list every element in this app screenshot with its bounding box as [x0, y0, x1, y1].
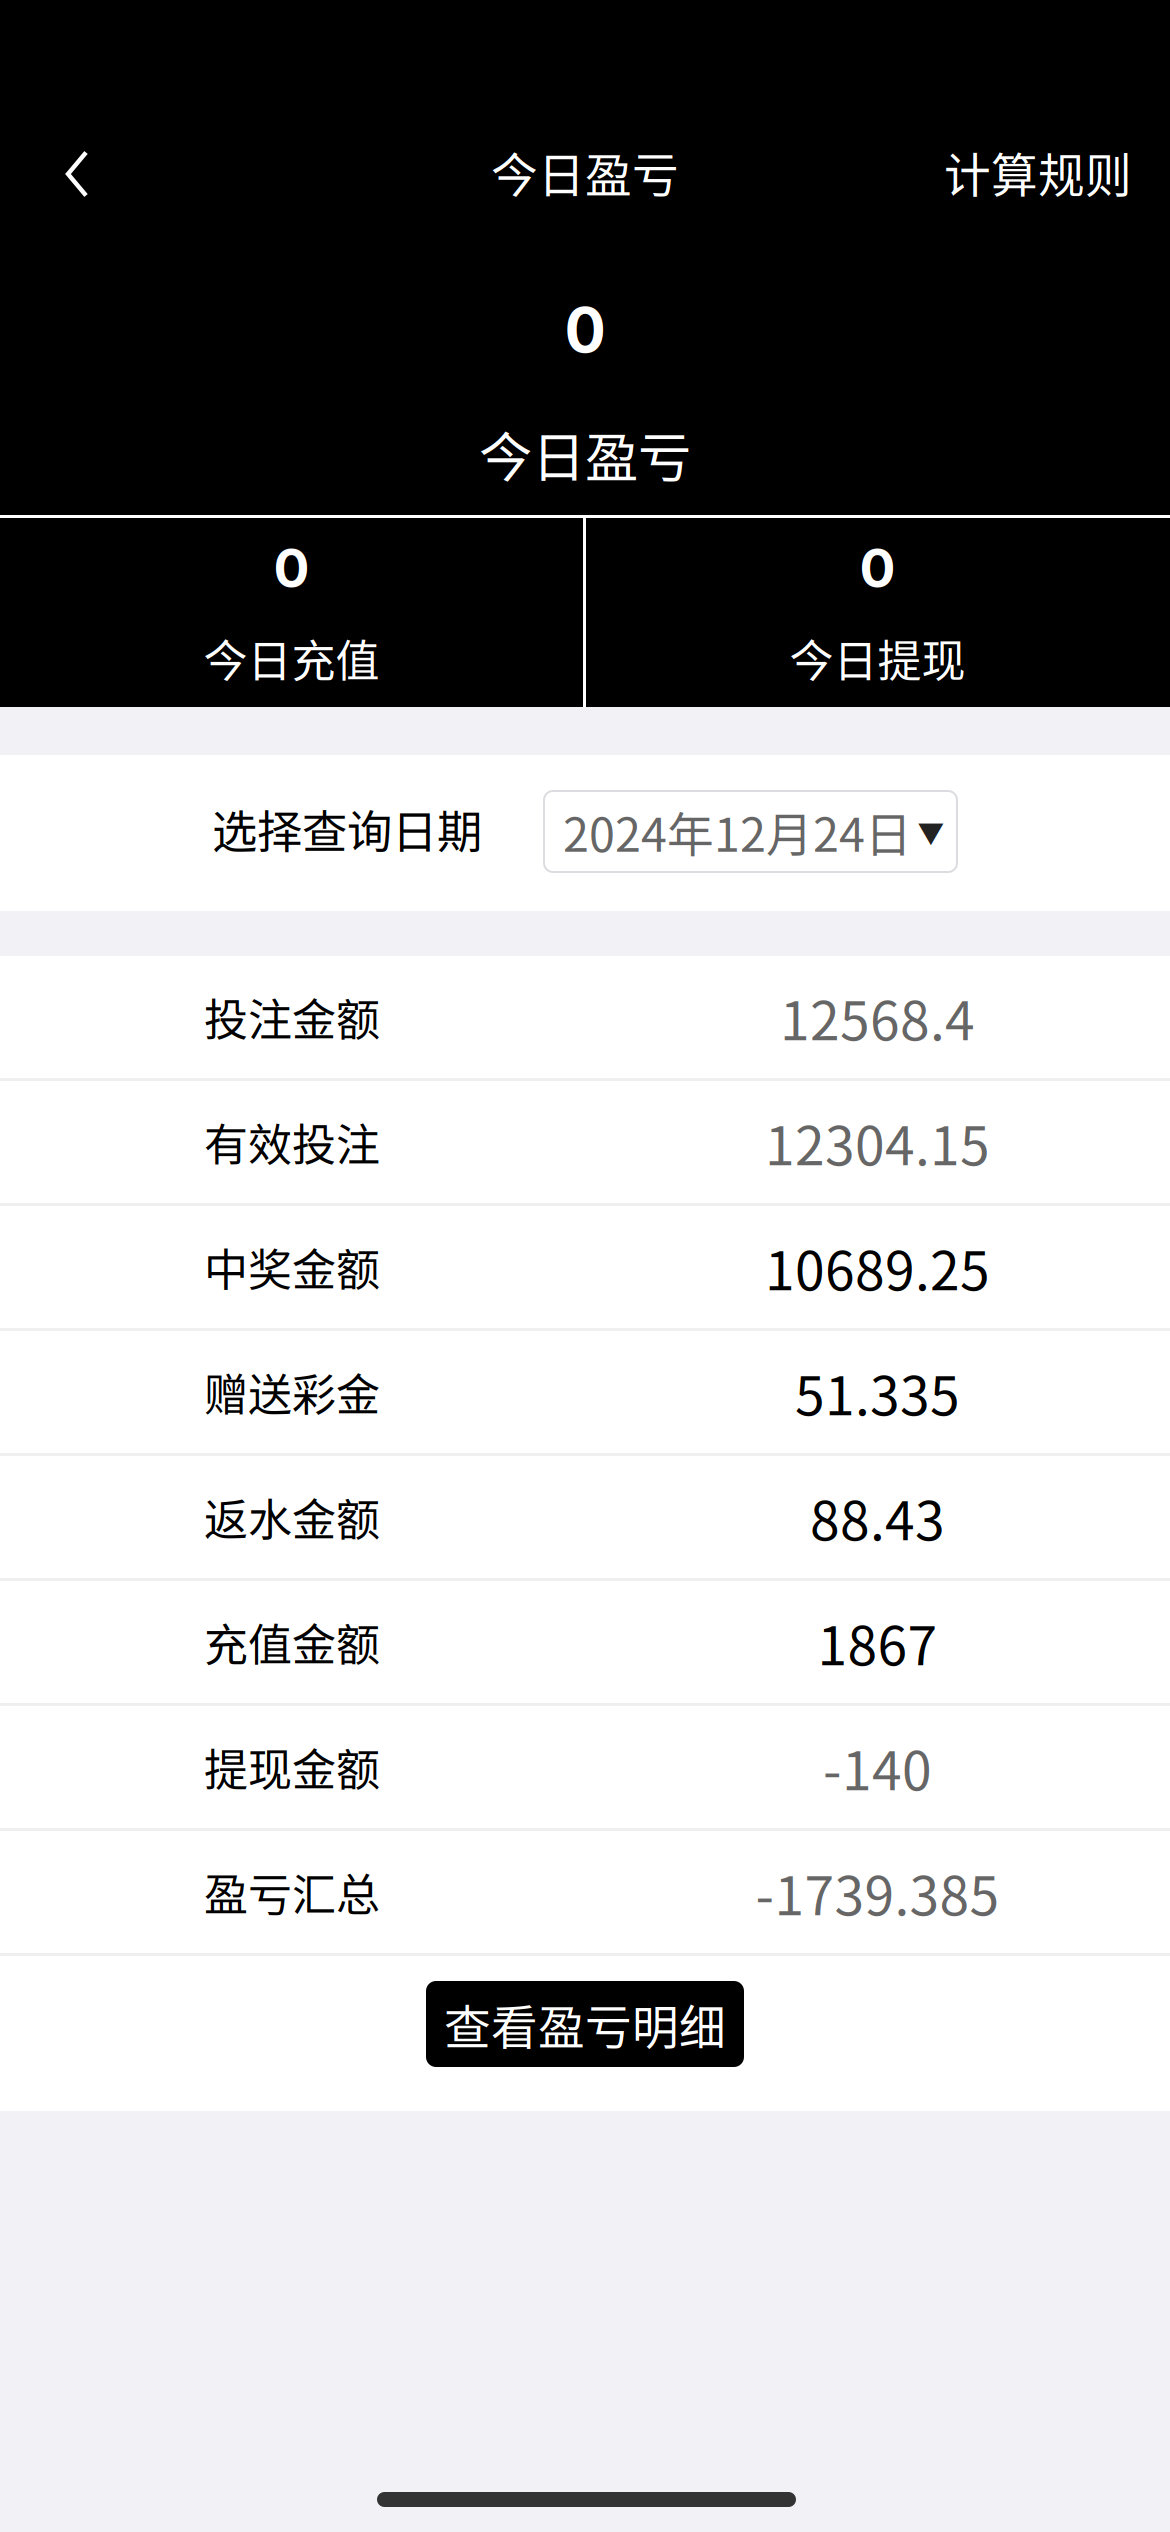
button[interactable]: 查看盈亏明细 [426, 1981, 744, 2067]
staticText: 赠送彩金 [204, 1360, 380, 1424]
staticText: 51.335 [795, 1353, 960, 1431]
staticText: ▼ [917, 812, 944, 851]
staticText: 0 [859, 536, 895, 600]
staticText: 有效投注 [204, 1110, 380, 1174]
button[interactable]: 返回 [12, 120, 142, 228]
staticText: 查看盈亏明细 [444, 1990, 726, 2058]
staticText: 投注金额 [204, 985, 380, 1049]
staticText: 2024年12月24日 [563, 798, 912, 865]
staticText: 今日盈亏 [491, 138, 679, 206]
staticText: 今日充值 [203, 626, 379, 690]
staticText: 10689.25 [765, 1228, 990, 1306]
staticText: 今日盈亏 [479, 415, 691, 493]
staticText: 今日提现 [789, 626, 965, 690]
staticText: 中奖金额 [204, 1235, 380, 1299]
staticText: 选择查询日期 [212, 796, 482, 862]
staticText: -140 [823, 1728, 932, 1806]
staticText: 提现金额 [204, 1735, 380, 1799]
staticText: 0 [273, 536, 309, 600]
staticText: 12568.4 [780, 978, 975, 1056]
button[interactable]: 2024年12月24日 [544, 791, 957, 872]
staticText: -1739.385 [755, 1853, 999, 1931]
staticText: 返水金额 [204, 1485, 380, 1549]
staticText: 充值金额 [204, 1610, 380, 1674]
staticText: 0 [564, 293, 605, 367]
staticText: 盈亏汇总 [204, 1860, 380, 1924]
button[interactable]: 计算规则 [870, 118, 1132, 226]
staticText: 12304.15 [765, 1103, 990, 1181]
staticText: 88.43 [810, 1478, 945, 1556]
staticText: 计算规则 [944, 138, 1132, 206]
staticText: 1867 [817, 1603, 937, 1681]
